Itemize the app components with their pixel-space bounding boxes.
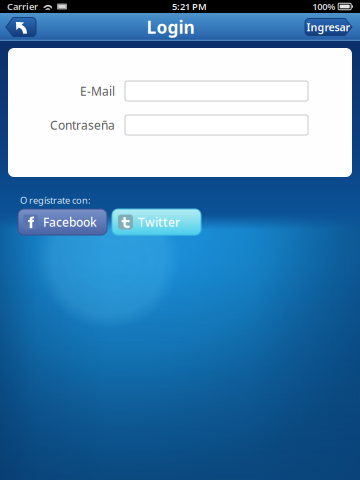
button[interactable]: Facebook [18, 209, 107, 235]
button[interactable]: Ingresar [305, 18, 352, 35]
button[interactable]: Back [6, 17, 36, 36]
staticText: Carrier [7, 0, 38, 13]
staticText: Twitter [138, 214, 180, 230]
staticText: Contraseña [50, 117, 115, 133]
staticText: 100% [312, 0, 335, 13]
staticText: Ingresar [306, 20, 350, 34]
button[interactable]: Twitter [112, 209, 201, 235]
staticText: O regístrate con: [20, 194, 91, 206]
staticText: Login [146, 15, 194, 38]
staticText: 5:21 PM [172, 0, 207, 13]
staticText: E-Mail [80, 83, 115, 99]
staticText: Facebook [43, 214, 97, 230]
